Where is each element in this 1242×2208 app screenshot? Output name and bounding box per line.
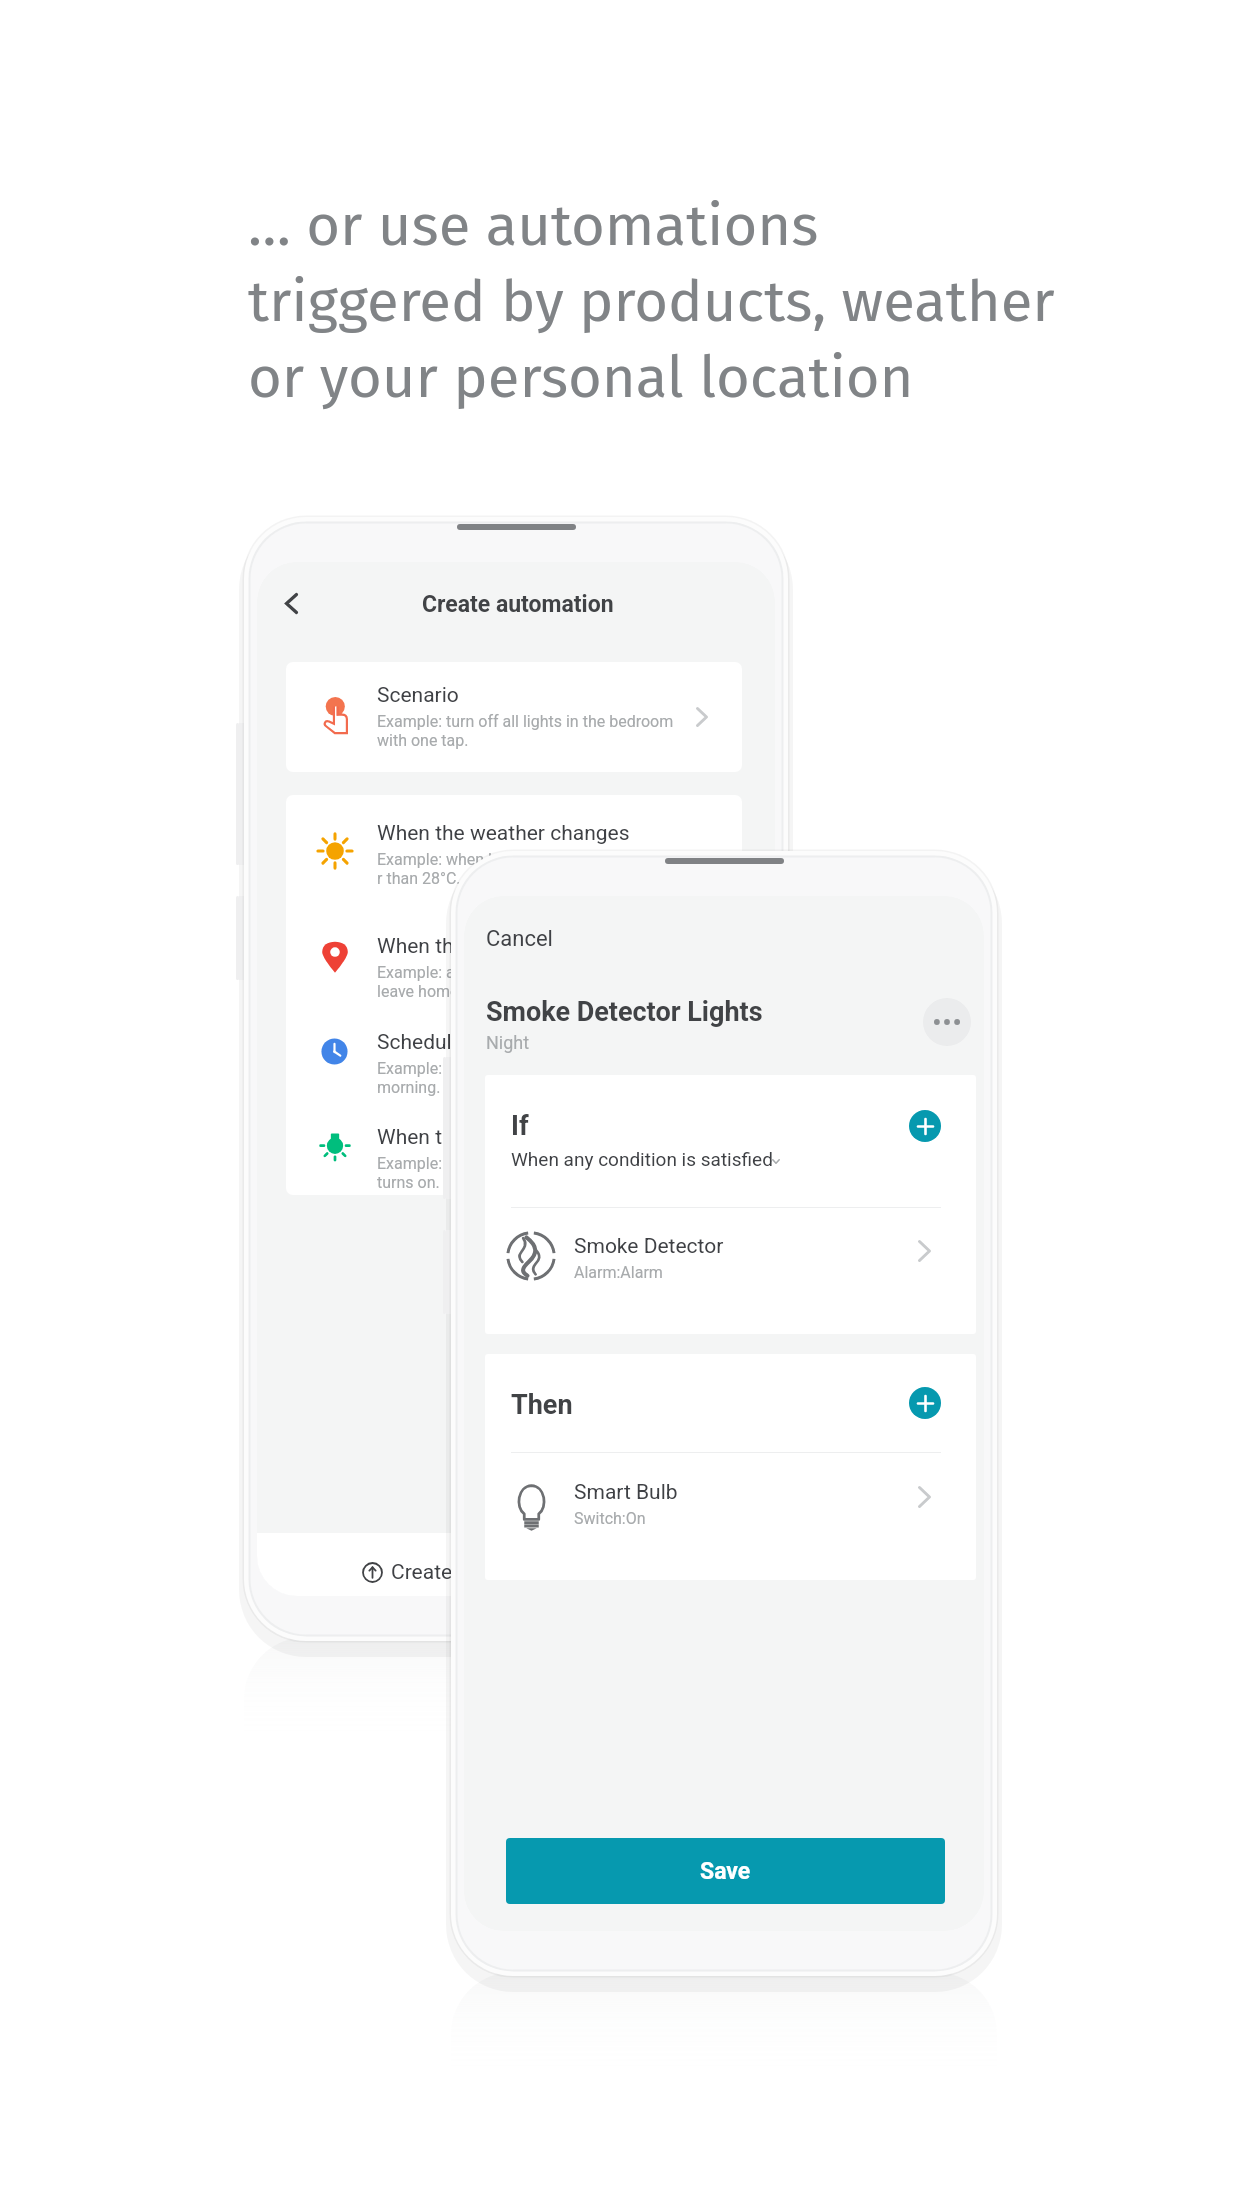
button[interactable]: Add — [909, 1110, 941, 1142]
staticText: When the location changes — [377, 934, 630, 959]
staticText: When the device status — [377, 1125, 594, 1150]
button[interactable]: Create automation — [362, 1560, 565, 1585]
button[interactable]: When the weather changes — [286, 821, 742, 891]
button[interactable]: Smart Bulb — [485, 1480, 976, 1542]
staticText: Example: at 7:00 every morning. — [377, 1059, 537, 1097]
staticText: When the weather changes — [377, 821, 630, 846]
staticText: Smoke Detector — [574, 1234, 724, 1259]
button[interactable]: Smoke Detector — [485, 1234, 976, 1296]
staticText: … or use automations triggered by produc… — [248, 191, 1055, 413]
button[interactable]: Cancel — [470, 910, 570, 958]
button[interactable]: Save — [506, 1838, 945, 1904]
staticText: Alarm:Alarm — [574, 1263, 663, 1282]
staticText: Cancel — [486, 926, 553, 952]
button[interactable]: More options — [923, 998, 971, 1046]
button[interactable]: When the device status — [286, 1125, 742, 1195]
staticText: Example: when lower r than 28°C. — [377, 850, 528, 888]
staticText: Smart Bulb — [574, 1480, 678, 1505]
button[interactable]: Back — [267, 579, 315, 627]
staticText: Example: turn off all lights in the bedr… — [377, 712, 674, 750]
staticText: Save — [700, 1858, 751, 1885]
staticText: Create automation — [422, 591, 614, 618]
staticText: Smoke Detector Lights — [486, 996, 763, 1028]
staticText: Schedule — [377, 1030, 463, 1055]
staticText: When any condition is satisfied — [511, 1148, 773, 1170]
staticText: Then — [511, 1389, 573, 1421]
staticText: Night — [486, 1032, 530, 1053]
staticText: If — [511, 1110, 529, 1142]
staticText: Scenario — [377, 683, 459, 708]
button[interactable]: Scenario — [286, 662, 742, 772]
staticText: Create automation — [391, 1560, 565, 1585]
button[interactable]: Schedule — [286, 1030, 742, 1100]
button[interactable]: Add — [909, 1387, 941, 1419]
button[interactable]: When any condition is satisfied — [511, 1145, 777, 1177]
staticText: Example: arrive home or leave home. — [377, 963, 549, 1001]
staticText: Switch:On — [574, 1509, 646, 1528]
button[interactable]: When the location changes — [286, 934, 742, 1004]
staticText: Example: when a bulb turns on. — [377, 1154, 532, 1192]
